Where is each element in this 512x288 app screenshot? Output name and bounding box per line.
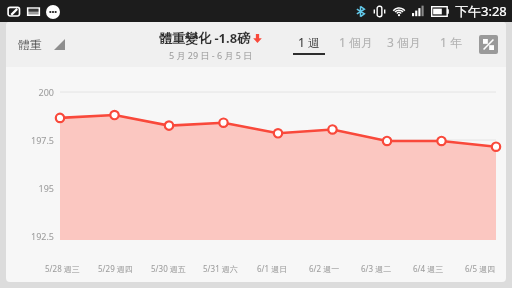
staticText: 5/30 週五 <box>151 263 186 274</box>
staticText: 5/29 週四 <box>98 263 133 274</box>
staticText: 體重變化 -1.8磅 <box>159 29 251 47</box>
staticText: 體重 <box>18 37 42 52</box>
staticText: 197.5 <box>6 134 54 146</box>
button[interactable]: 1 個月 <box>332 32 380 57</box>
staticText: 3 個月 <box>387 34 421 50</box>
staticText: 5/31 週六 <box>203 263 238 274</box>
staticText: 1 個月 <box>339 34 373 50</box>
button[interactable]: 體重變化 -1.8磅 <box>159 29 262 61</box>
button[interactable]: 體重 <box>14 33 69 56</box>
staticText: 6/5 週四 <box>465 263 496 274</box>
staticText: 5/28 週三 <box>45 263 80 274</box>
staticText: 1 年 <box>440 34 462 50</box>
other: Expand <box>54 39 65 50</box>
staticText: 192.5 <box>6 230 54 242</box>
button[interactable]: Fullscreen <box>479 35 498 54</box>
staticText: 5 月 29 日 - 6 月 5 日 <box>169 49 253 61</box>
staticText: 6/4 週三 <box>413 263 444 274</box>
staticText: 195 <box>6 182 54 194</box>
button[interactable]: 1 年 <box>428 32 474 57</box>
button[interactable]: 1 週 <box>286 32 332 57</box>
staticText: 6/1 週日 <box>257 263 288 274</box>
button[interactable]: 3 個月 <box>380 32 428 57</box>
staticText: 1 週 <box>298 34 320 50</box>
staticText: 6/2 週一 <box>309 263 340 274</box>
staticText: 下午3:28 <box>455 2 507 20</box>
staticText: 200 <box>6 86 54 98</box>
staticText: 6/3 週二 <box>361 263 392 274</box>
